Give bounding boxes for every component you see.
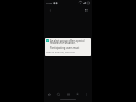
button[interactable]: An alert popup offers special rewards fo…: [45, 38, 91, 56]
staticText: open in free trial, place bid: [46, 51, 75, 54]
button[interactable]: Profile: [74, 90, 81, 98]
staticText: An alert popup offers special rewards fo…: [50, 39, 90, 45]
button[interactable]: Library: [65, 90, 72, 98]
button[interactable]: Apps: [83, 7, 89, 13]
button[interactable]: More: [83, 90, 90, 98]
staticText: 12:04 ●●: [46, 1, 58, 4]
button[interactable]: Home: [46, 90, 53, 98]
staticText: Participating users must: [50, 46, 80, 49]
button[interactable]: Back: [47, 7, 53, 13]
button[interactable]: Discover: [55, 90, 62, 98]
